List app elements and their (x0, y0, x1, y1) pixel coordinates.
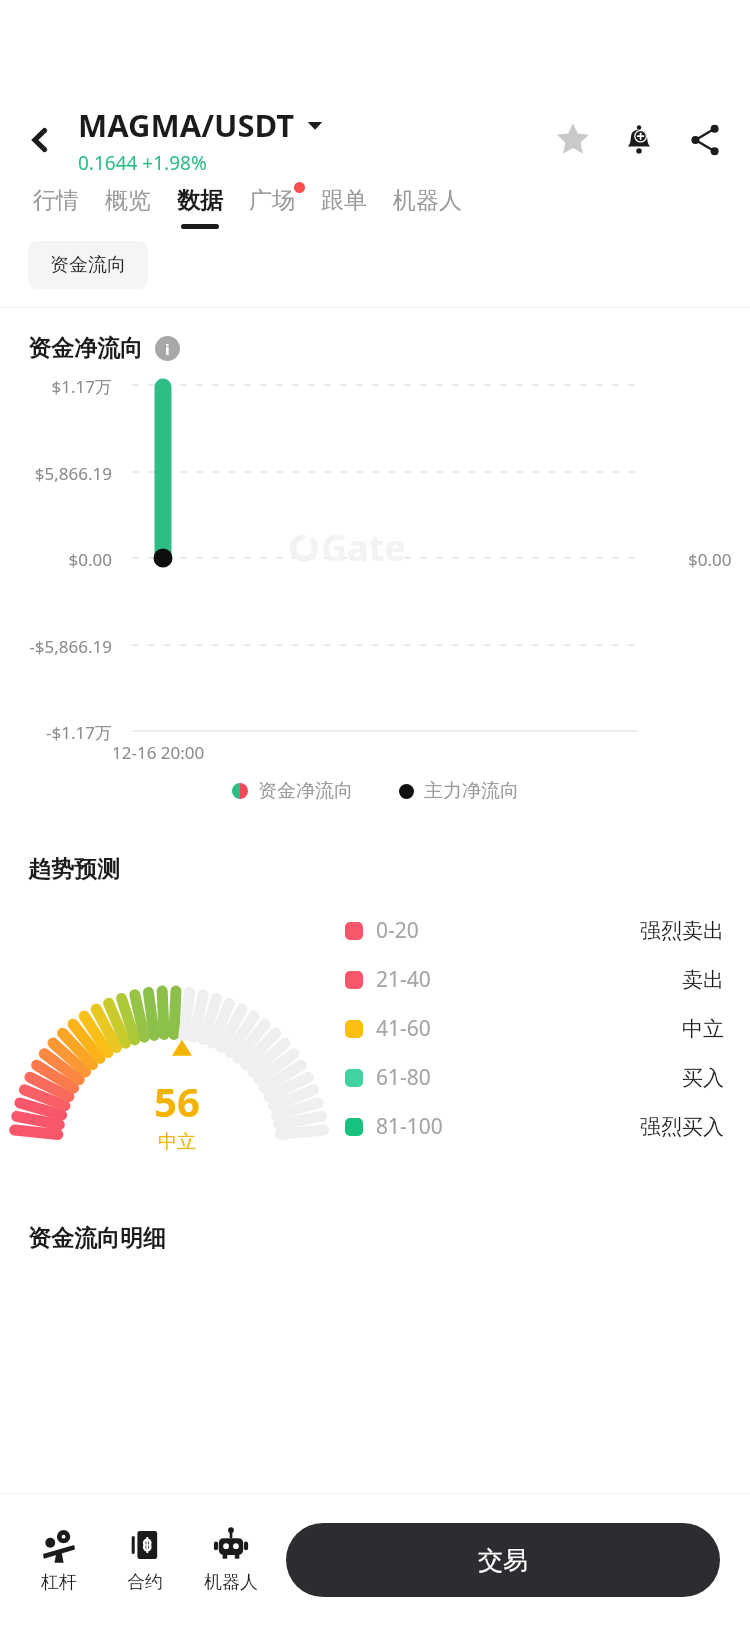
button[interactable]: Price alert (610, 111, 668, 169)
staticText: 资金净流向 (28, 334, 143, 363)
button[interactable]: 资金流向 (28, 241, 148, 289)
staticText: 机器人 (204, 1571, 258, 1594)
button[interactable]: 杠杆 (16, 1522, 102, 1598)
button[interactable]: 81-100 (345, 1112, 724, 1141)
button[interactable]: 21-40 (345, 965, 724, 994)
staticText: $1.17万 (0, 375, 112, 398)
staticText: $5,866.19 (0, 462, 112, 485)
staticText: 0-20 (376, 916, 419, 945)
staticText: 合约 (127, 1571, 163, 1594)
button[interactable]: Back (14, 114, 66, 166)
button[interactable]: 交易 (286, 1523, 720, 1597)
button[interactable]: 41-60 (345, 1014, 724, 1043)
staticText: Gate (321, 523, 406, 572)
staticText: 卖出 (682, 967, 724, 993)
staticText: $0.00 (688, 548, 732, 571)
staticText: 强烈买入 (640, 1114, 724, 1140)
button[interactable]: 跟单 (308, 184, 380, 231)
button[interactable]: 资金净流向 (232, 779, 353, 803)
button[interactable]: 主力净流向 (399, 779, 519, 803)
staticText: i (165, 339, 170, 359)
staticText: 中立 (158, 1130, 196, 1154)
button[interactable]: 0-20 (345, 916, 724, 945)
staticText: -$5,866.19 (0, 635, 112, 658)
staticText: 12-16 20:00 (112, 741, 205, 764)
staticText: $0.00 (0, 548, 112, 571)
button[interactable]: Info (155, 336, 180, 361)
button[interactable]: 数据 (164, 184, 236, 231)
staticText: 81-100 (376, 1112, 443, 1141)
staticText: MAGMA/USDT (78, 104, 295, 146)
staticText: 交易 (478, 1545, 528, 1576)
staticText: 中立 (682, 1016, 724, 1042)
staticText: 数据 (177, 186, 223, 215)
button[interactable]: 概览 (92, 184, 164, 231)
staticText: 机器人 (393, 186, 462, 215)
staticText: 61-80 (376, 1063, 431, 1092)
button[interactable]: 61-80 (345, 1063, 724, 1092)
staticText: 买入 (682, 1065, 724, 1091)
staticText: 资金流向明细 (28, 1224, 166, 1253)
button[interactable]: 行情 (20, 184, 92, 231)
staticText: 行情 (33, 186, 79, 215)
button[interactable]: Favorite (544, 111, 602, 169)
staticText: 资金流向 (50, 253, 126, 277)
staticText: 资金净流向 (258, 779, 353, 803)
button[interactable]: Share (676, 111, 734, 169)
button[interactable]: 机器人 (188, 1522, 274, 1598)
button[interactable]: 广场 (236, 184, 308, 231)
staticText: 跟单 (321, 186, 367, 215)
staticText: 21-40 (376, 965, 431, 994)
staticText: -$1.17万 (0, 721, 112, 744)
staticText: 主力净流向 (424, 779, 519, 803)
button[interactable]: 机器人 (380, 184, 475, 231)
staticText: 56 (154, 1074, 200, 1128)
staticText: 广场 (249, 186, 295, 215)
button[interactable]: Switch pair (307, 117, 323, 133)
button[interactable]: 合约 (102, 1522, 188, 1598)
staticText: 杠杆 (41, 1571, 77, 1594)
staticText: 0.1644 +1.98% (78, 150, 207, 176)
staticText: 趋势预测 (28, 855, 120, 884)
staticText: 41-60 (376, 1014, 431, 1043)
staticText: 概览 (105, 186, 151, 215)
staticText: 强烈卖出 (640, 918, 724, 944)
